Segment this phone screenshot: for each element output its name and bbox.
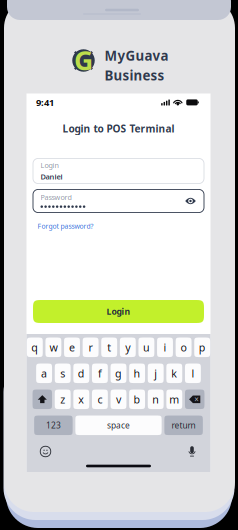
staticText: MyGuava xyxy=(104,47,168,65)
staticText: i xyxy=(163,340,166,354)
button[interactable]: v xyxy=(110,390,126,409)
button[interactable]: Key xyxy=(185,390,204,409)
staticText: h xyxy=(134,366,141,380)
staticText: Forgot password? xyxy=(37,221,93,231)
staticText: n xyxy=(152,392,159,406)
button[interactable]: m xyxy=(166,390,182,409)
button[interactable]: p xyxy=(194,338,210,357)
button[interactable]: j xyxy=(148,364,164,383)
staticText: Login xyxy=(106,306,130,317)
button[interactable]: u xyxy=(138,338,154,357)
staticText: G xyxy=(74,42,93,78)
button[interactable]: space xyxy=(75,416,162,435)
button[interactable]: Login xyxy=(33,300,204,323)
staticText: o xyxy=(181,340,187,354)
staticText: z xyxy=(60,392,65,406)
button[interactable]: Password xyxy=(33,189,204,212)
button[interactable]: c xyxy=(92,390,108,409)
staticText: v xyxy=(116,392,121,406)
staticText: g xyxy=(115,366,122,380)
staticText: r xyxy=(89,340,93,354)
staticText: u xyxy=(143,340,150,354)
staticText: p xyxy=(199,340,206,354)
button[interactable]: b xyxy=(129,390,145,409)
button[interactable]: r xyxy=(83,338,99,357)
button[interactable]: s xyxy=(55,364,71,383)
staticText: y xyxy=(125,340,130,354)
button[interactable]: t xyxy=(101,338,117,357)
staticText: d xyxy=(78,366,85,380)
staticText: k xyxy=(171,366,177,380)
button[interactable]: x xyxy=(73,390,89,409)
button[interactable]: y xyxy=(120,338,136,357)
staticText: w xyxy=(49,340,57,354)
staticText: return xyxy=(172,420,196,431)
staticText: f xyxy=(98,366,102,380)
button[interactable]: Login xyxy=(33,158,204,183)
button[interactable]: Key xyxy=(32,390,52,409)
button[interactable]: Emoji keyboard xyxy=(39,445,51,457)
button[interactable]: f xyxy=(92,364,108,383)
staticText: space xyxy=(107,420,130,431)
staticText: t xyxy=(107,340,111,354)
button[interactable]: i xyxy=(157,338,173,357)
button[interactable]: l xyxy=(185,364,201,383)
button[interactable]: return xyxy=(164,416,203,435)
staticText: x xyxy=(78,392,84,406)
staticText: 123 xyxy=(46,420,61,431)
staticText: q xyxy=(31,340,38,354)
staticText: e xyxy=(69,340,75,354)
staticText: s xyxy=(60,366,65,380)
staticText: Login xyxy=(40,160,58,170)
button[interactable]: e xyxy=(64,338,80,357)
button[interactable]: Dictation xyxy=(186,445,197,457)
staticText: Business xyxy=(104,66,164,84)
button[interactable]: 123 xyxy=(34,416,73,435)
staticText: l xyxy=(191,366,194,380)
staticText: × xyxy=(194,394,199,405)
staticText: j xyxy=(154,366,157,380)
button[interactable]: d xyxy=(73,364,89,383)
staticText: b xyxy=(134,392,141,406)
staticText: m xyxy=(169,392,179,406)
staticText: Login to POS Terminal xyxy=(62,122,174,135)
button[interactable]: n xyxy=(148,390,164,409)
button[interactable]: w xyxy=(45,338,61,357)
button[interactable]: g xyxy=(110,364,126,383)
button[interactable]: a xyxy=(36,364,52,383)
staticText: Daniel xyxy=(40,172,62,182)
staticText: a xyxy=(41,366,47,380)
staticText: Password xyxy=(40,192,71,202)
button[interactable]: Forgot password? xyxy=(37,221,93,231)
staticText: 9:41 xyxy=(36,96,54,109)
button[interactable]: q xyxy=(27,338,43,357)
button[interactable]: z xyxy=(55,390,71,409)
staticText: c xyxy=(97,392,102,406)
button[interactable]: k xyxy=(166,364,182,383)
button[interactable]: o xyxy=(176,338,191,357)
button[interactable]: h xyxy=(129,364,145,383)
